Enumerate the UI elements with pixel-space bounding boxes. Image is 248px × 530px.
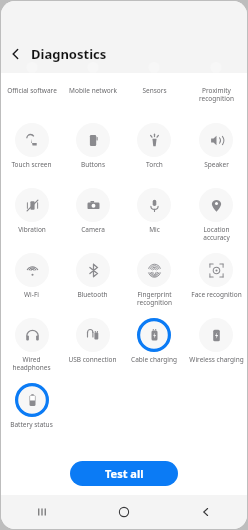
button[interactable]: Fingerprint recognition — [123, 247, 185, 312]
button[interactable]: Cable charging — [123, 312, 185, 377]
staticText: Face recognition — [191, 290, 242, 299]
button[interactable]: Location accuracy — [185, 182, 247, 247]
button[interactable]: Wireless charging — [185, 312, 247, 377]
staticText: Wired headphones — [12, 355, 51, 372]
button[interactable]: Home — [83, 495, 165, 529]
staticText: Location accuracy — [203, 225, 230, 242]
staticText: Proximity recognition — [199, 86, 234, 103]
button[interactable]: Official software — [1, 73, 62, 117]
button[interactable]: Sensors — [123, 73, 185, 117]
button[interactable]: Face recognition — [185, 247, 247, 312]
button[interactable]: Proximity recognition — [185, 73, 247, 117]
staticText: Buttons — [81, 160, 105, 169]
staticText: Touch screen — [11, 160, 52, 169]
staticText: Wi-Fi — [24, 290, 39, 299]
staticText: Vibration — [18, 225, 46, 234]
button[interactable]: Back — [1, 39, 31, 69]
button[interactable]: Torch — [123, 117, 185, 182]
button[interactable]: Bluetooth — [62, 247, 123, 312]
staticText: Sensors — [142, 86, 167, 95]
button[interactable]: Touch screen — [1, 117, 62, 182]
staticText: Mobile network — [69, 86, 117, 95]
button[interactable]: Wi-Fi — [1, 247, 62, 312]
staticText: Test all — [105, 466, 144, 481]
button[interactable]: Wired headphones — [1, 312, 62, 377]
staticText: Speaker — [204, 160, 229, 169]
staticText: Battery status — [10, 420, 53, 429]
button[interactable]: Battery status — [1, 377, 62, 442]
button[interactable]: Test all — [70, 461, 178, 486]
button[interactable]: Mic — [123, 182, 185, 247]
staticText: Torch — [146, 160, 163, 169]
staticText: Mic — [149, 225, 160, 234]
button[interactable]: Back — [165, 495, 247, 529]
staticText: Wireless charging — [189, 355, 244, 364]
staticText: USB connection — [68, 355, 117, 364]
staticText: Diagnostics — [31, 45, 107, 63]
button[interactable]: Buttons — [62, 117, 123, 182]
staticText: Bluetooth — [77, 290, 108, 299]
staticText: Official software — [7, 86, 57, 95]
button[interactable]: Speaker — [185, 117, 247, 182]
staticText: Camera — [81, 225, 105, 234]
button[interactable]: Vibration — [1, 182, 62, 247]
staticText: Fingerprint recognition — [137, 290, 172, 307]
button[interactable]: Recent apps — [1, 495, 83, 529]
button[interactable]: USB connection — [62, 312, 123, 377]
staticText: Cable charging — [131, 355, 177, 364]
button[interactable]: Mobile network — [62, 73, 123, 117]
button[interactable]: Camera — [62, 182, 123, 247]
